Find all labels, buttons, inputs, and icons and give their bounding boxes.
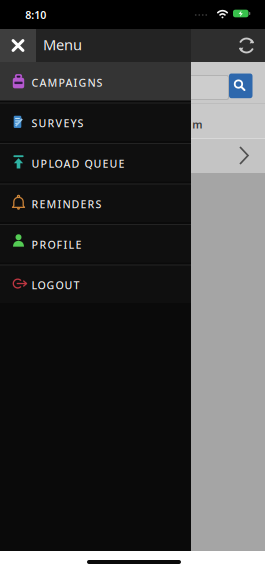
button[interactable]: Refresh — [235, 34, 257, 56]
staticText: CAMPAIGNS — [31, 76, 102, 90]
staticText: PROFILE — [31, 238, 81, 252]
button[interactable]: UPLOAD QUEUE — [0, 143, 191, 181]
button[interactable]: REMINDERS — [0, 183, 191, 222]
staticText: UPLOAD QUEUE — [31, 157, 124, 171]
staticText: SURVEYS — [31, 116, 83, 130]
button[interactable]: CAMPAIGNS — [0, 62, 191, 100]
button[interactable]: PROFILE — [0, 224, 191, 262]
staticText: m — [192, 117, 202, 131]
button[interactable]: Search — [229, 73, 252, 98]
button[interactable]: LOGOUT — [0, 264, 191, 303]
staticText: LOGOUT — [31, 278, 79, 292]
staticText: Menu — [43, 35, 82, 54]
staticText: REMINDERS — [31, 197, 101, 211]
button[interactable]: SURVEYS — [0, 102, 191, 141]
button[interactable]: Open item — [0, 138, 265, 173]
staticText: 8:10 — [25, 8, 46, 22]
button[interactable]: Close menu — [0, 29, 36, 62]
